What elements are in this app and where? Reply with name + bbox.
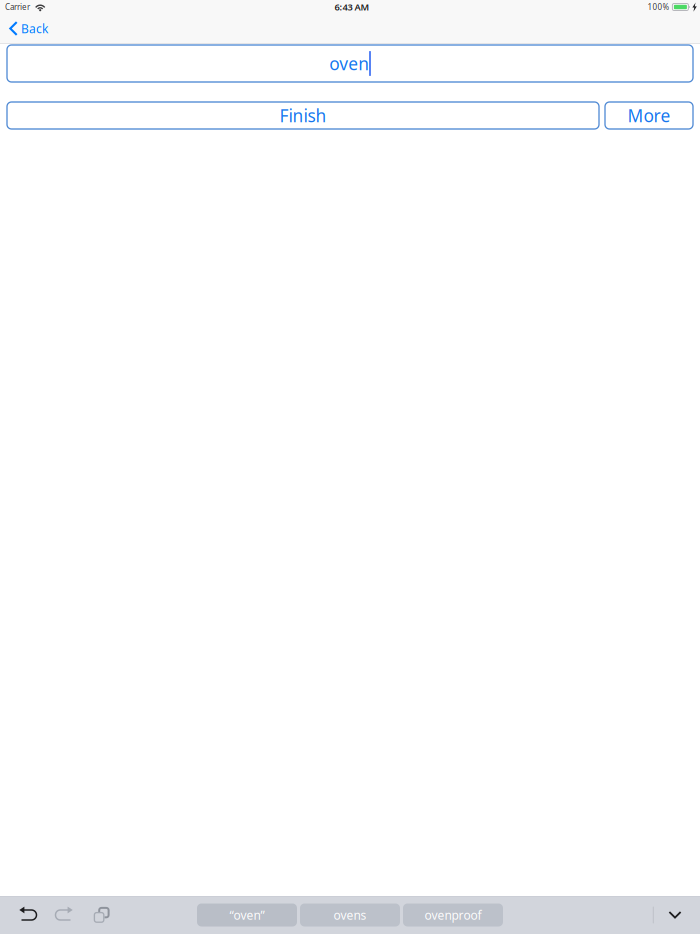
staticText: ovens <box>333 907 366 923</box>
button[interactable]: “oven” <box>197 903 297 926</box>
staticText: ovenproof <box>424 907 481 923</box>
staticText: 6:43 AM <box>334 1 369 13</box>
staticText: Finish <box>279 104 326 127</box>
button[interactable]: Redo <box>46 896 83 934</box>
staticText: oven <box>329 52 369 75</box>
button[interactable]: oven <box>7 45 693 82</box>
staticText: 100% <box>647 2 669 12</box>
button[interactable]: Hide keyboard <box>654 896 696 934</box>
button[interactable]: Back <box>0 14 58 43</box>
button[interactable]: More <box>605 102 693 129</box>
button[interactable]: ovens <box>300 903 400 926</box>
staticText: More <box>627 104 670 127</box>
staticText: “oven” <box>229 907 264 923</box>
button[interactable]: Undo <box>9 896 46 934</box>
staticText: Carrier <box>5 2 30 12</box>
button[interactable]: Finish <box>7 102 599 129</box>
staticText: Back <box>21 20 48 36</box>
button[interactable]: Paste <box>83 896 120 934</box>
button[interactable]: ovenproof <box>403 903 503 926</box>
